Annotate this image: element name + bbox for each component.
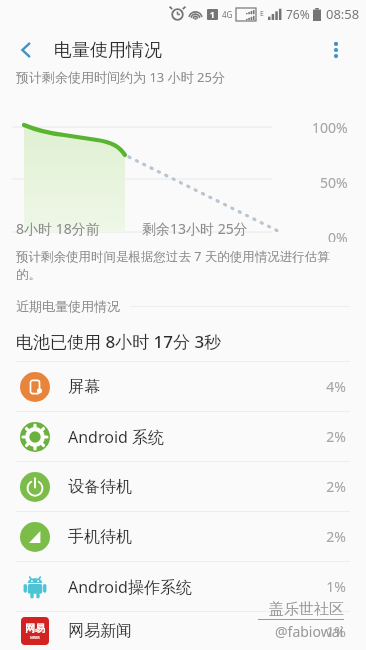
staticText: 电量使用情况	[54, 39, 162, 62]
staticText: 1%	[326, 622, 346, 641]
staticText: 2%	[326, 477, 346, 496]
staticText: @fabiowai	[275, 622, 344, 641]
staticText: 近期电量使用情况	[16, 298, 120, 314]
staticText: 网易新闻	[68, 621, 326, 641]
button[interactable]: 网易	[0, 612, 366, 650]
staticText: 1%	[326, 577, 346, 596]
staticText: 4G	[222, 9, 233, 20]
staticText: 76%	[286, 6, 310, 22]
staticText: 4%	[326, 377, 346, 396]
button[interactable]: 屏幕	[0, 362, 366, 411]
staticText: Android 系统	[68, 426, 326, 448]
button[interactable]: 返回	[8, 32, 44, 68]
button[interactable]: Android操作系统	[0, 562, 366, 611]
staticText: 2%	[326, 427, 346, 446]
staticText: Android操作系统	[68, 576, 326, 598]
button[interactable]: 手机待机	[0, 512, 366, 561]
staticText: 2%	[326, 527, 346, 546]
staticText: 设备待机	[68, 477, 326, 497]
staticText: 0%	[328, 228, 348, 242]
staticText: E	[260, 9, 264, 19]
staticText: 08:58	[326, 5, 360, 23]
staticText: 100%	[312, 118, 348, 137]
staticText: 网易	[25, 622, 45, 635]
staticText: 预计剩余使用时间约为 13 小时 25分	[16, 68, 225, 86]
staticText: 盖乐世社区	[269, 600, 344, 619]
staticText: 50%	[320, 173, 348, 192]
staticText: NEWS	[30, 635, 40, 640]
button[interactable]: 更多选项	[318, 32, 354, 68]
staticText: 1	[210, 9, 215, 20]
staticText: 屏幕	[68, 377, 326, 397]
staticText: 剩余13小时 25分	[142, 219, 248, 238]
button[interactable]: 设备待机	[0, 462, 366, 511]
button[interactable]: Android 系统	[0, 412, 366, 461]
staticText: 预计剩余使用时间是根据您过去 7 天的使用情况进行估算的。	[16, 248, 354, 282]
staticText: 电池已使用 8小时 17分 3秒	[16, 330, 222, 353]
staticText: 手机待机	[68, 527, 326, 547]
staticText: 8小时 18分前	[16, 219, 100, 238]
